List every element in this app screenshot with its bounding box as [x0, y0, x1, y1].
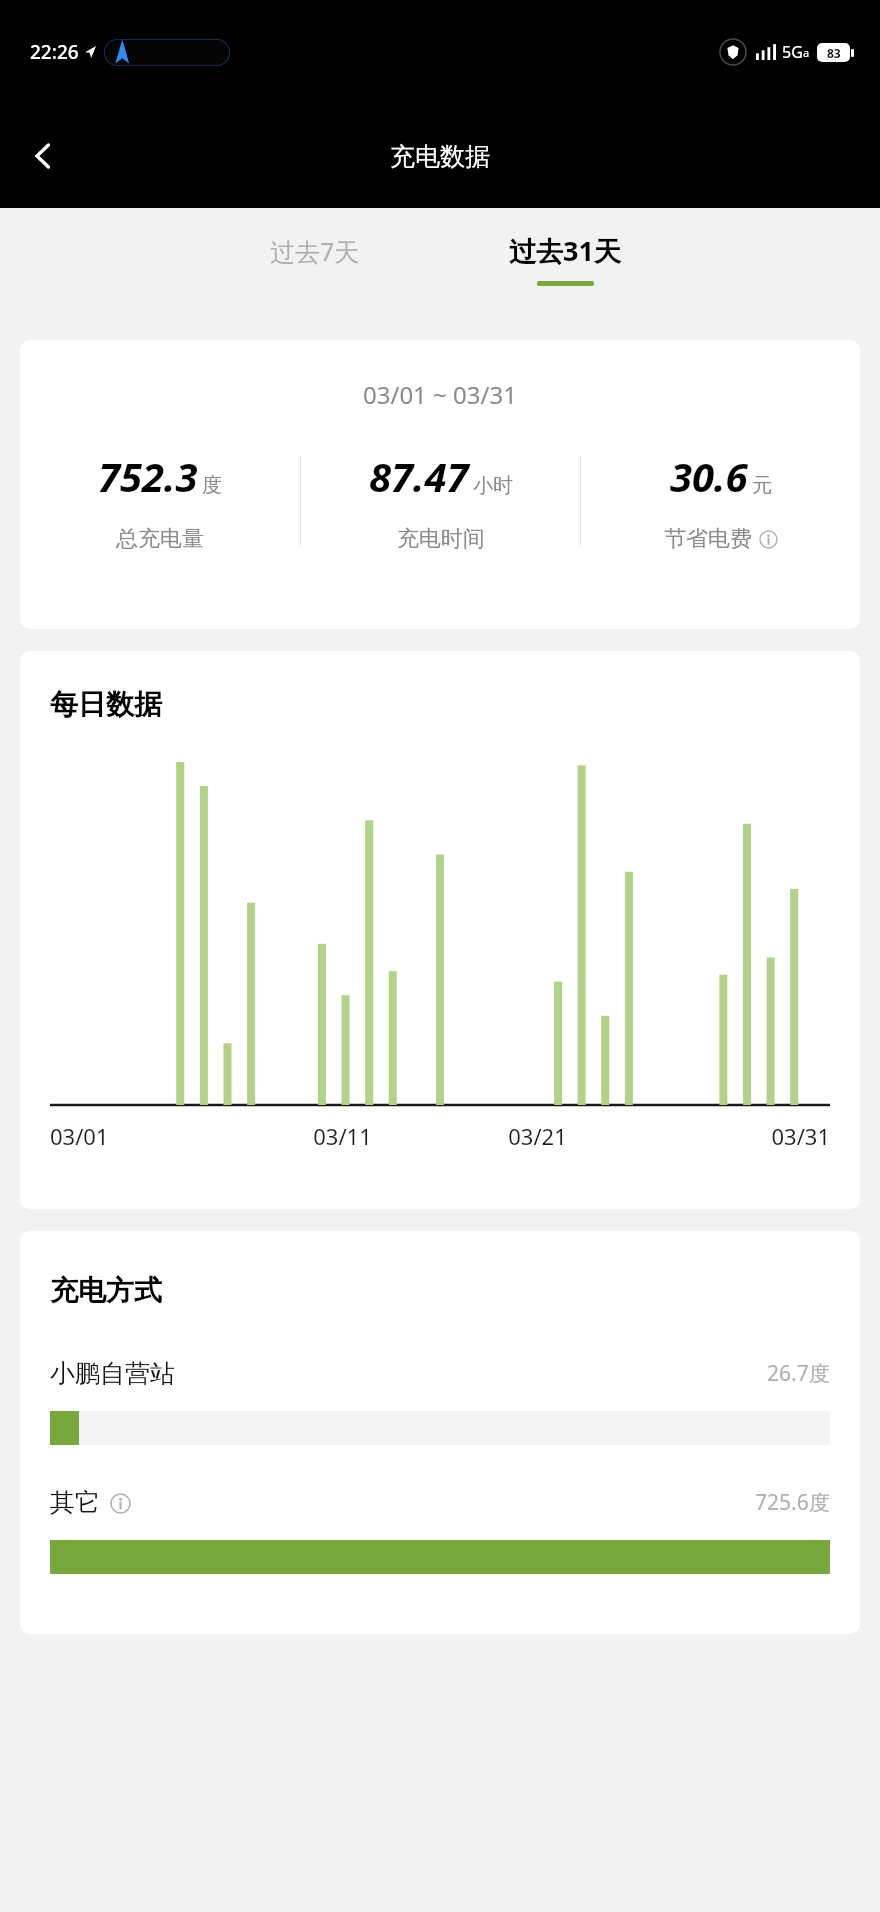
- staticText: 充电方式: [50, 1273, 162, 1308]
- staticText: 小时: [473, 473, 513, 498]
- staticText: 度: [202, 473, 222, 498]
- staticText: 87.47: [369, 449, 469, 503]
- staticText: 30.6: [670, 449, 748, 503]
- button[interactable]: Info: [109, 1492, 131, 1514]
- staticText: 充电时间: [397, 525, 485, 553]
- button[interactable]: 充电方式: [20, 1231, 860, 1634]
- staticText: 过去31天: [509, 232, 621, 269]
- staticText: 03/01: [50, 1121, 245, 1151]
- staticText: 83: [827, 45, 841, 61]
- staticText: 725.6度: [755, 1488, 830, 1517]
- staticText: 过去7天: [270, 234, 360, 268]
- button[interactable]: 过去7天: [190, 208, 440, 268]
- button[interactable]: 每日数据: [20, 651, 860, 1209]
- button[interactable]: Back: [18, 130, 70, 182]
- staticText: 元: [752, 473, 772, 498]
- staticText: 26.7度: [767, 1359, 830, 1388]
- staticText: 752.3: [98, 449, 198, 503]
- staticText: 5G: [782, 41, 803, 63]
- button[interactable]: 过去31天: [440, 208, 690, 286]
- staticText: 总充电量: [116, 525, 204, 553]
- staticText: 小鹏自营站: [50, 1358, 175, 1389]
- staticText: 03/01 ~ 03/31: [363, 378, 517, 411]
- staticText: 充电数据: [390, 141, 490, 172]
- staticText: a: [803, 45, 810, 60]
- staticText: 22:26: [30, 39, 79, 65]
- staticText: 03/31: [635, 1121, 830, 1151]
- button[interactable]: 03/01 ~ 03/31: [20, 340, 860, 629]
- staticText: 03/11: [245, 1121, 440, 1151]
- staticText: 其它: [50, 1487, 100, 1518]
- staticText: 03/21: [440, 1121, 635, 1151]
- staticText: 节省电费: [664, 525, 752, 553]
- staticText: 每日数据: [50, 687, 162, 722]
